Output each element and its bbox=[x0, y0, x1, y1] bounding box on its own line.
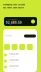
button[interactable]: Transaction bbox=[4, 52, 36, 58]
button[interactable]: Service bbox=[27, 44, 33, 50]
staticText: Yesterday bbox=[8, 67, 15, 69]
button[interactable]: See all bbox=[24, 34, 36, 37]
staticText: Account balance bbox=[6, 18, 18, 20]
staticText: Transaction bbox=[8, 53, 18, 55]
button[interactable]: Service bbox=[19, 44, 25, 50]
button[interactable]: Transaction bbox=[4, 64, 36, 70]
staticText: Transaction bbox=[8, 59, 18, 61]
staticText: Yesterday bbox=[8, 55, 15, 57]
staticText: Managing your account bbox=[3, 3, 25, 6]
staticText: Transaction bbox=[8, 65, 18, 67]
button[interactable]: Account balance bbox=[4, 17, 37, 26]
staticText: has never been easier bbox=[3, 6, 24, 9]
button[interactable]: Service bbox=[12, 44, 18, 50]
staticText: Services bbox=[5, 34, 12, 37]
staticText: Yesterday bbox=[8, 61, 15, 63]
button[interactable]: Service bbox=[4, 44, 10, 50]
button[interactable]: Transaction bbox=[4, 58, 36, 64]
staticText: $2,480.50 bbox=[6, 21, 22, 25]
